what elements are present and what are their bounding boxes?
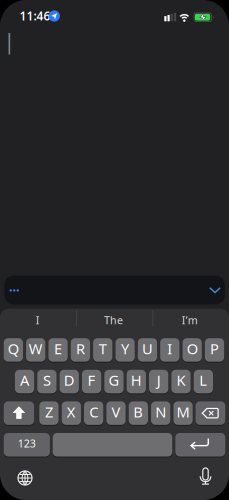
button[interactable]: J [149,370,168,393]
staticText: N [155,402,166,421]
button[interactable]: N [151,401,170,425]
staticText: Y [121,339,129,358]
button[interactable]: U [138,338,157,362]
staticText: X [67,402,76,421]
button[interactable]: Dictate [198,466,212,488]
button[interactable]: I [160,338,179,362]
staticText: C [89,402,98,421]
button[interactable]: B [129,401,148,425]
button[interactable]: Z [39,401,59,425]
button[interactable]: A [15,370,34,393]
staticText: U [142,339,153,358]
button[interactable]: W [26,338,45,362]
button[interactable]: Delete [195,401,225,425]
button[interactable]: R [71,338,90,362]
button[interactable]: Return [175,433,225,456]
staticText: R [76,339,85,358]
staticText: P [210,339,219,358]
button[interactable]: O [182,338,202,362]
staticText: I [167,339,172,358]
button[interactable]: E [48,338,68,362]
button[interactable]: X [62,401,81,425]
staticText: 11:46 [19,8,50,24]
staticText: W [29,339,43,358]
button[interactable]: V [106,401,126,425]
button[interactable]: H [127,370,146,393]
staticText: Q [8,339,19,358]
button[interactable]: L [194,370,213,393]
staticText: F [88,370,96,390]
staticText: E [54,339,62,358]
button[interactable]: Shift [4,401,34,425]
button[interactable]: T [93,338,112,362]
staticText: L [199,370,207,390]
button[interactable]: 123 [4,433,50,456]
staticText: G [108,370,119,390]
staticText: S [43,370,51,390]
staticText: I’m [182,313,198,327]
button[interactable]: Dismiss keyboard [207,285,223,296]
staticText: 123 [18,436,36,450]
staticText [109,430,115,460]
staticText: I [36,313,40,327]
button[interactable]: I [1,308,75,332]
staticText: Z [45,402,53,421]
staticText: H [131,370,142,390]
staticText: O [187,339,198,358]
staticText: M [177,402,190,421]
staticText: The [104,313,123,327]
button[interactable]: Next keyboard [15,468,35,488]
button[interactable]: I’m [153,308,227,332]
staticText: D [64,370,75,390]
button[interactable]: Y [115,338,135,362]
button[interactable]: M [173,401,193,425]
button[interactable]: More [4,275,225,304]
button[interactable]: G [104,370,124,393]
button[interactable]: S [37,370,56,393]
staticText: J [157,370,161,390]
button[interactable]: F [82,370,101,393]
button[interactable]: K [171,370,191,393]
staticText: T [99,339,107,358]
button[interactable]: D [60,370,79,393]
button[interactable]: Q [4,338,23,362]
button[interactable]: C [84,401,103,425]
button[interactable]: P [205,338,224,362]
staticText: B [133,402,143,421]
staticText: K [176,370,185,390]
staticText: V [111,402,120,421]
staticText: A [20,370,29,390]
button[interactable]: Space [53,433,172,456]
button[interactable]: The [76,308,150,332]
